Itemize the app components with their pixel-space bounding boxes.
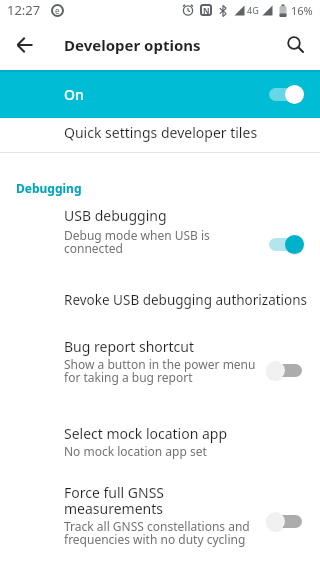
staticText: N: [203, 5, 210, 16]
button[interactable]: [0, 20, 50, 70]
button[interactable]: USB debugging: [0, 203, 320, 278]
staticText: 4G: [247, 4, 259, 16]
staticText: Select mock location app: [64, 424, 228, 443]
staticText: Force full GNSS measurements: [64, 483, 165, 518]
button[interactable]: Force full GNSS measurements: [0, 466, 320, 556]
staticText: Revoke USB debugging authorizations: [64, 291, 308, 309]
staticText: Debug mode when USB is connected: [64, 227, 210, 257]
staticText: e: [55, 5, 60, 16]
staticText: On: [64, 85, 84, 104]
staticText: 12:27: [7, 1, 41, 19]
staticText: Bug report shortcut: [64, 337, 195, 356]
staticText: 16%: [291, 3, 313, 18]
button[interactable]: Bug report shortcut: [0, 326, 320, 410]
button[interactable]: Revoke USB debugging authorizations: [0, 278, 320, 326]
staticText: Debugging: [16, 180, 82, 196]
button[interactable]: [272, 21, 320, 69]
staticText: Developer options: [64, 35, 201, 55]
staticText: USB debugging: [64, 206, 167, 225]
staticText: Track all GNSS constellations and freque…: [64, 518, 250, 548]
staticText: Show a button in the power menu for taki…: [64, 356, 256, 386]
staticText: Quick settings developer tiles: [64, 123, 258, 142]
staticText: No mock location app set: [64, 443, 207, 459]
button[interactable]: Select mock location app: [0, 410, 320, 466]
button[interactable]: On: [0, 70, 320, 118]
button[interactable]: Quick settings developer tiles: [0, 118, 320, 152]
